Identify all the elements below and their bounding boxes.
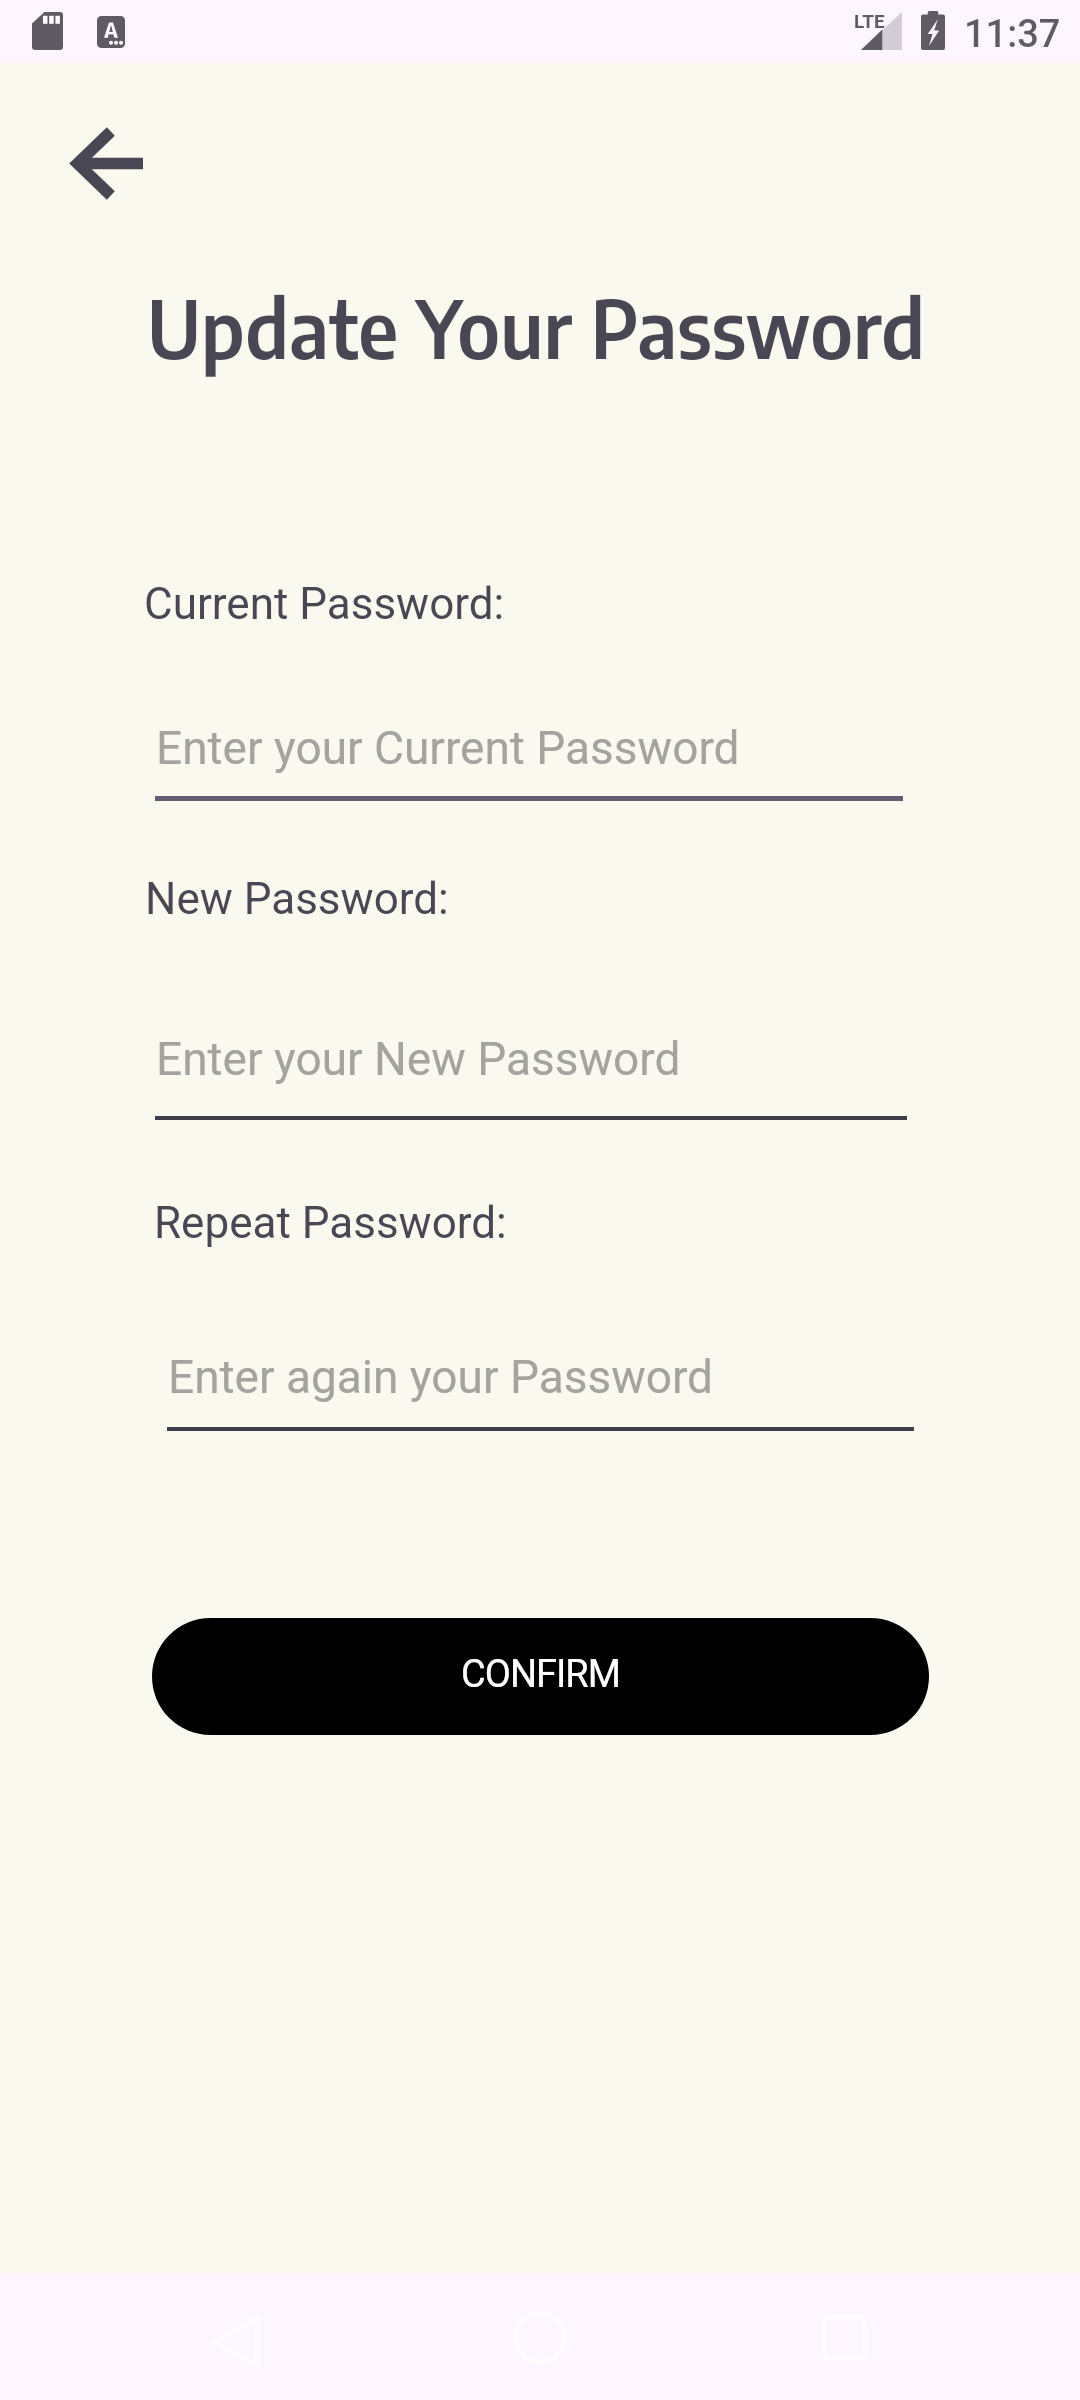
- staticText: Enter again your Password: [168, 1350, 714, 1404]
- staticText: New Password:: [145, 873, 449, 925]
- staticText: CONFIRM: [461, 1652, 620, 1697]
- staticText: Enter your New Password: [156, 1032, 681, 1086]
- staticText: Current Password:: [144, 578, 505, 630]
- button[interactable]: CONFIRM: [152, 1618, 929, 1735]
- staticText: 11:37: [964, 12, 1061, 57]
- staticText: Enter your Current Password: [156, 721, 740, 775]
- staticText: Repeat Password:: [154, 1197, 507, 1249]
- staticText: LTE: [854, 10, 885, 32]
- button[interactable]: Back: [49, 115, 169, 211]
- staticText: Update Your Password: [147, 278, 925, 377]
